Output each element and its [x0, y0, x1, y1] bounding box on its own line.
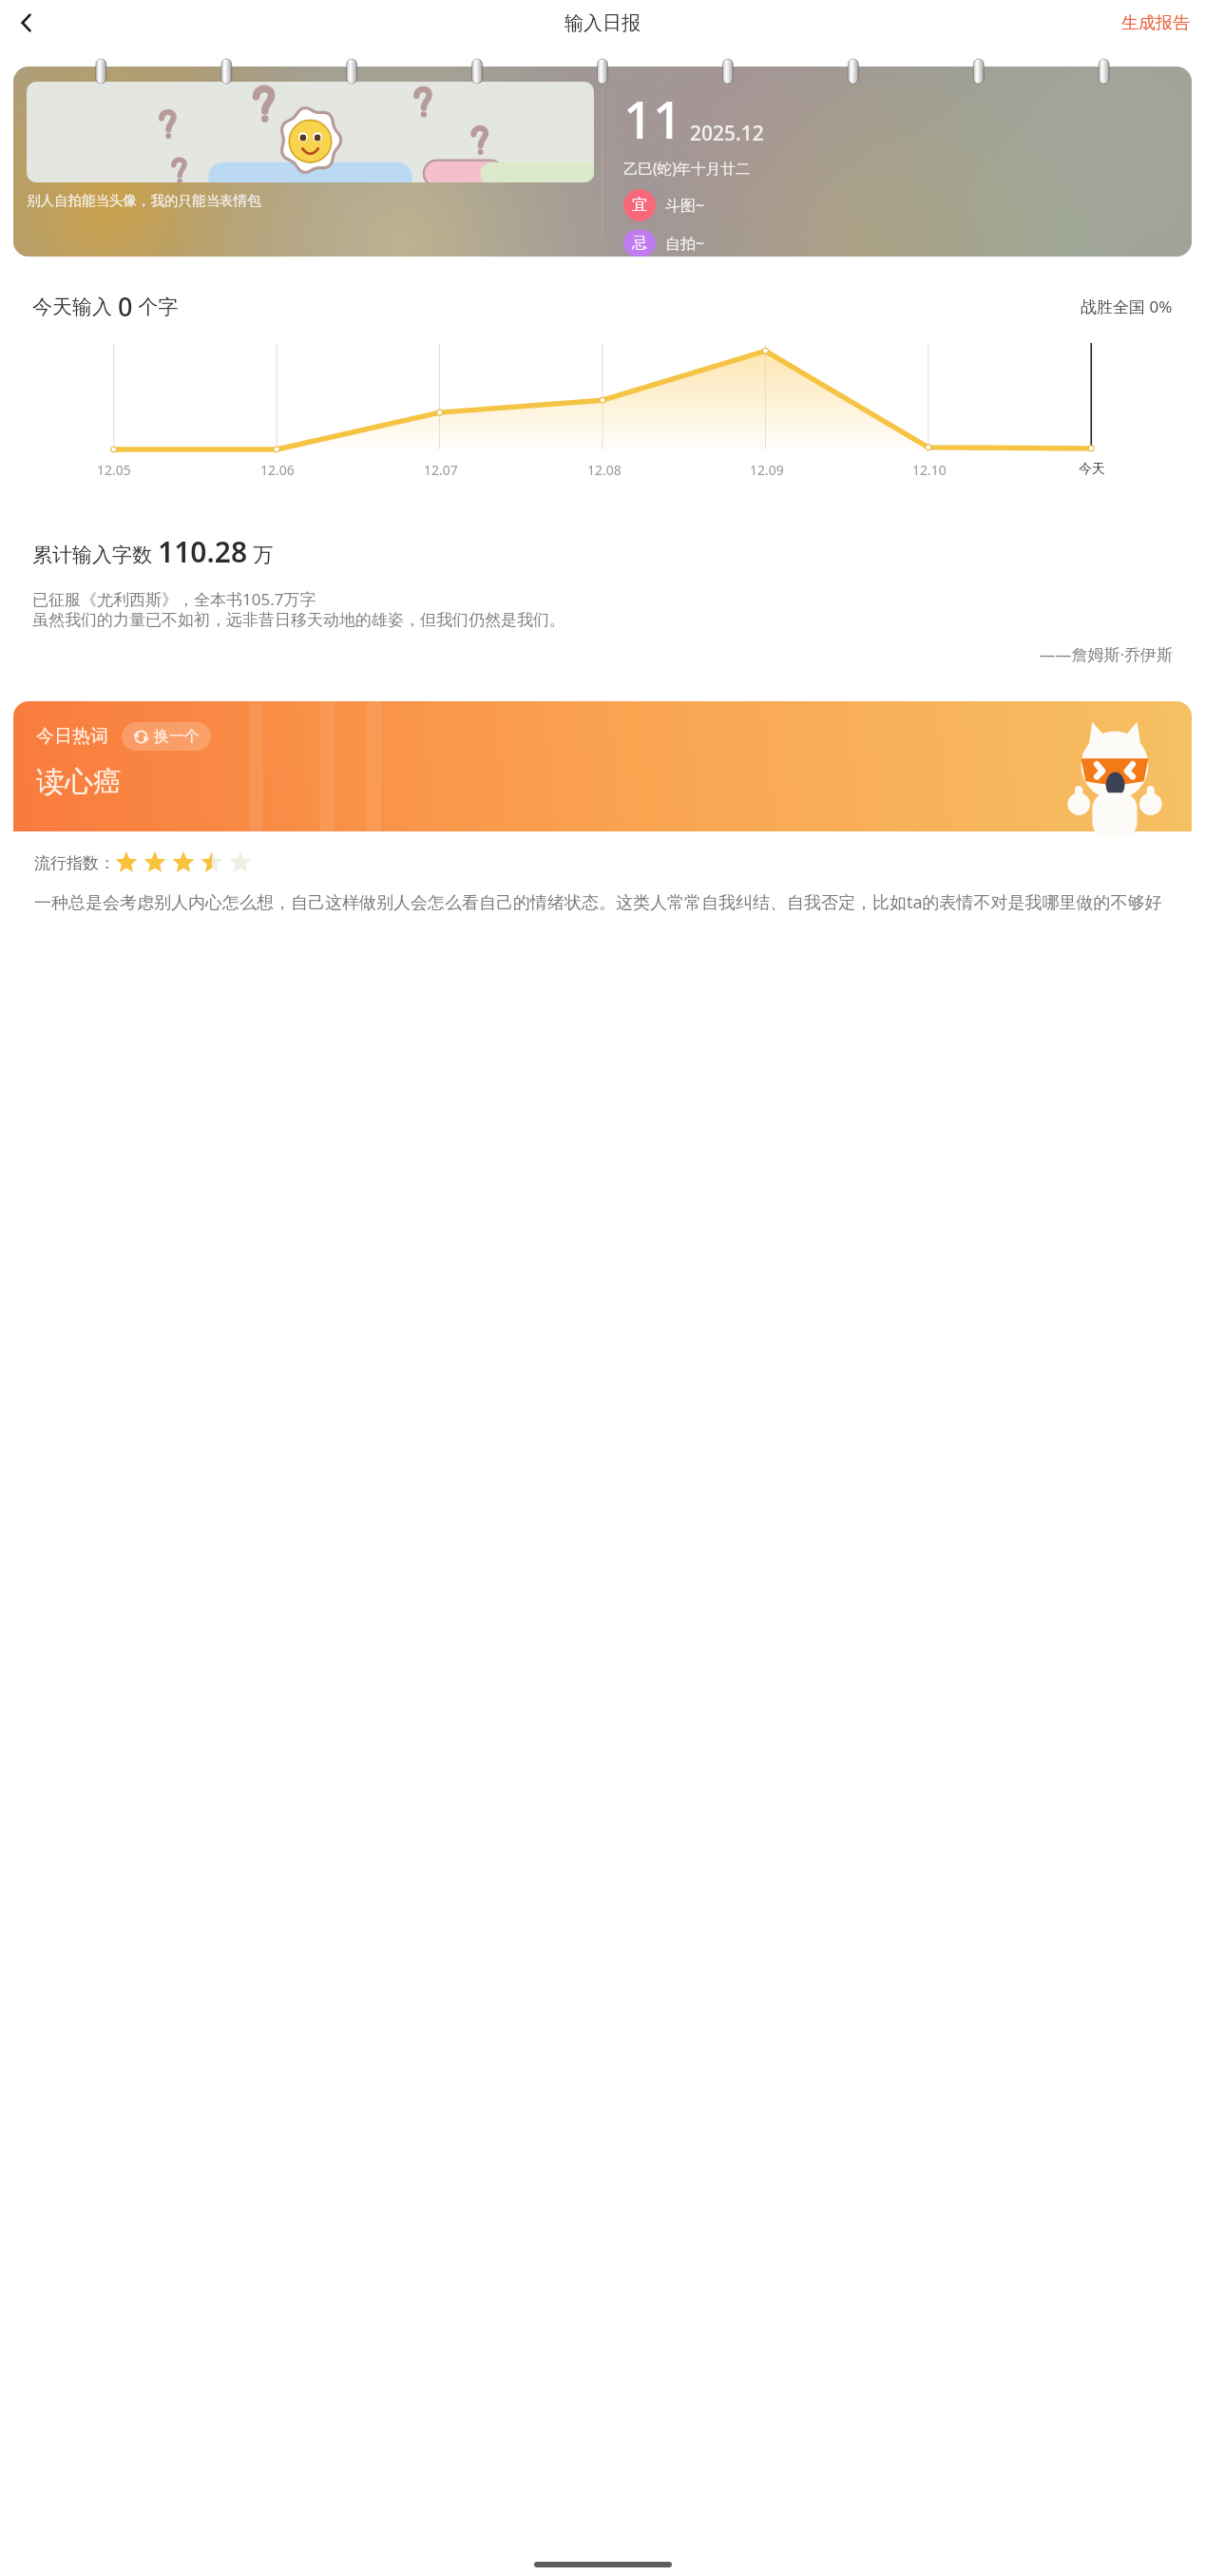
staticText: 12.07: [424, 461, 458, 479]
staticText: 累计输入字数: [32, 541, 158, 568]
staticText: 别人自拍能当头像，我的只能当表情包: [27, 192, 261, 209]
staticText: 宜: [632, 196, 647, 215]
staticText: 12.10: [912, 461, 947, 479]
staticText: 虽然我们的力量已不如初，远非昔日移天动地的雄姿，但我们仍然是我们。: [32, 610, 565, 630]
staticText: 换一个: [154, 727, 200, 746]
staticText: 个字: [133, 293, 179, 320]
button[interactable]: 别人自拍能当头像，我的只能当表情包: [13, 67, 1192, 257]
staticText: 乙巳(蛇)年十月廿二: [623, 158, 751, 178]
staticText: ——詹姆斯·乔伊斯: [32, 643, 1173, 665]
staticText: 自拍~: [665, 233, 705, 254]
staticText: 输入日报: [564, 11, 641, 35]
staticText: 11: [623, 84, 682, 154]
staticText: 已征服《尤利西斯》，全本书105.7万字: [32, 588, 316, 610]
staticText: 12.09: [750, 461, 784, 479]
button[interactable]: 累计输入字数: [13, 511, 1192, 686]
staticText: 12.08: [587, 461, 622, 479]
staticText: 今日热词: [36, 725, 108, 748]
staticText: 110.28: [158, 532, 248, 571]
staticText: 12.06: [260, 461, 295, 479]
button[interactable]: 生成报告: [1121, 12, 1190, 34]
staticText: 万: [248, 541, 274, 568]
staticText: 一种总是会考虑别人内心怎么想，自己这样做别人会怎么看自己的情绪状态。这类人常常自…: [34, 890, 1162, 914]
button[interactable]: 换一个: [122, 722, 211, 751]
button[interactable]: 今日热词: [13, 701, 1192, 914]
staticText: 斗图~: [665, 195, 705, 216]
button[interactable]: Back: [4, 0, 49, 46]
staticText: 2025.12: [690, 120, 764, 147]
staticText: 今天输入: [32, 293, 118, 320]
staticText: 今天: [1079, 461, 1105, 478]
staticText: 流行指数：: [34, 853, 115, 873]
staticText: 12.05: [97, 461, 131, 479]
staticText: 战胜全国 0%: [1081, 296, 1173, 317]
staticText: 忌: [632, 234, 647, 253]
staticText: 0: [118, 289, 133, 324]
staticText: 生成报告: [1121, 12, 1190, 34]
button[interactable]: 今天输入: [13, 272, 1192, 496]
staticText: 读心癌: [36, 764, 122, 800]
